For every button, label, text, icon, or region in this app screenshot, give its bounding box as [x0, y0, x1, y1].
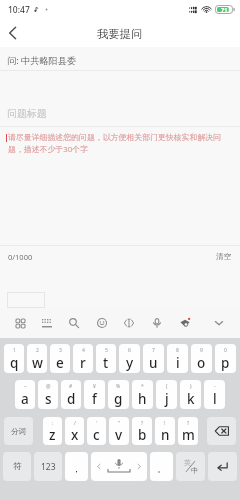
- button[interactable]: -: [204, 380, 225, 409]
- staticText: 问题标题: [7, 107, 47, 119]
- staticText: ，: [72, 463, 81, 474]
- staticText: o: [197, 354, 206, 372]
- staticText: 71: [221, 6, 228, 13]
- button[interactable]: Space: [91, 452, 147, 481]
- staticText: 3: [59, 347, 62, 354]
- staticText: 2: [36, 347, 39, 354]
- button[interactable]: ": [109, 417, 129, 445]
- staticText: k: [187, 390, 195, 408]
- staticText: c: [93, 426, 100, 444]
- button[interactable]: ?: [178, 417, 198, 445]
- staticText: v: [115, 426, 123, 444]
- button[interactable]: Back: [0, 19, 25, 47]
- staticText: f: [92, 390, 97, 408]
- staticText: s: [45, 390, 52, 408]
- staticText: ¥: [93, 383, 96, 390]
- staticText: ?: [187, 420, 190, 427]
- button[interactable]: 符: [3, 452, 31, 481]
- staticText: 9: [200, 347, 203, 354]
- staticText: p: [221, 354, 230, 372]
- staticText: 7: [152, 347, 155, 354]
- button[interactable]: ?: [132, 417, 152, 445]
- staticText: 1: [13, 347, 16, 354]
- button[interactable]: 2: [27, 344, 47, 373]
- button[interactable]: Apps: [9, 312, 31, 334]
- button[interactable]: 6: [119, 344, 140, 373]
- button[interactable]: *: [132, 380, 153, 409]
- button[interactable]: :: [43, 417, 62, 445]
- button[interactable]: 0: [215, 344, 236, 373]
- staticText: 8: [176, 347, 179, 354]
- staticText: b: [138, 426, 147, 444]
- staticText: g: [114, 390, 123, 408]
- button[interactable]: !: [155, 417, 175, 445]
- staticText: l: [213, 390, 217, 408]
- button[interactable]: Hide keyboard: [208, 312, 230, 334]
- staticText: ~: [24, 383, 27, 390]
- staticText: z: [49, 426, 56, 444]
- staticText: 我要提问: [97, 27, 143, 41]
- staticText: h: [138, 390, 147, 408]
- staticText: *: [141, 383, 144, 390]
- button[interactable]: 3: [50, 344, 70, 373]
- staticText: #: [69, 383, 73, 390]
- button[interactable]: ¥: [84, 380, 105, 409]
- button[interactable]: Stickers: [174, 312, 196, 334]
- staticText: 6: [128, 347, 131, 354]
- button[interactable]: 8: [167, 344, 188, 373]
- staticText: y: [126, 354, 134, 372]
- button[interactable]: @: [38, 380, 58, 409]
- staticText: 请尽量详细描述您的问题，以方便相关部门更快核实和解决问题，描述不少于30个字: [8, 132, 230, 155]
- staticText: m: [182, 426, 195, 444]
- button[interactable]: ': [87, 417, 106, 445]
- button[interactable]: 。: [150, 452, 173, 481]
- staticText: ?: [141, 420, 144, 427]
- staticText: u: [149, 354, 158, 372]
- staticText: i: [176, 354, 180, 372]
- staticText: a: [21, 390, 29, 408]
- button[interactable]: 123: [34, 452, 62, 481]
- staticText: 中: [191, 466, 198, 475]
- button[interactable]: ，: [65, 452, 88, 481]
- button[interactable]: #: [61, 380, 81, 409]
- staticText: !: [164, 420, 166, 427]
- staticText: @: [46, 383, 51, 390]
- button[interactable]: /: [65, 417, 84, 445]
- button[interactable]: Chinese English toggle: [176, 452, 205, 481]
- staticText: /: [74, 420, 76, 427]
- button[interactable]: 7: [143, 344, 164, 373]
- button[interactable]: Keyboard: [36, 312, 58, 334]
- staticText: 符: [13, 461, 22, 472]
- staticText: j: [165, 390, 169, 408]
- staticText: n: [161, 426, 170, 444]
- staticText: r: [80, 354, 86, 372]
- button[interactable]: %: [108, 380, 129, 409]
- button[interactable]: ): [180, 380, 201, 409]
- button[interactable]: 4: [73, 344, 93, 373]
- button[interactable]: Voice input: [146, 312, 168, 334]
- button[interactable]: ~: [15, 380, 35, 409]
- button[interactable]: Move cursor: [118, 312, 140, 334]
- staticText: x: [71, 426, 79, 444]
- staticText: ): [190, 383, 192, 390]
- staticText: 10:47: [8, 4, 30, 16]
- staticText: ': [96, 420, 98, 427]
- button[interactable]: 5: [96, 344, 116, 373]
- staticText: (: [166, 383, 168, 390]
- staticText: 0: [224, 347, 227, 354]
- button[interactable]: Emoji: [91, 312, 113, 334]
- button[interactable]: Search: [63, 312, 85, 334]
- staticText: %: [116, 383, 121, 390]
- staticText: 4: [82, 347, 85, 354]
- button[interactable]: Add photo: [7, 292, 45, 308]
- button[interactable]: Enter: [208, 452, 237, 481]
- button[interactable]: 分词: [4, 417, 33, 445]
- staticText: 0/1000: [8, 252, 33, 262]
- staticText: -: [214, 383, 216, 390]
- staticText: w: [32, 354, 43, 372]
- button[interactable]: 1: [4, 344, 24, 373]
- button[interactable]: 9: [191, 344, 212, 373]
- button[interactable]: (: [156, 380, 177, 409]
- button[interactable]: Backspace: [207, 417, 236, 445]
- button[interactable]: 清空: [214, 250, 233, 263]
